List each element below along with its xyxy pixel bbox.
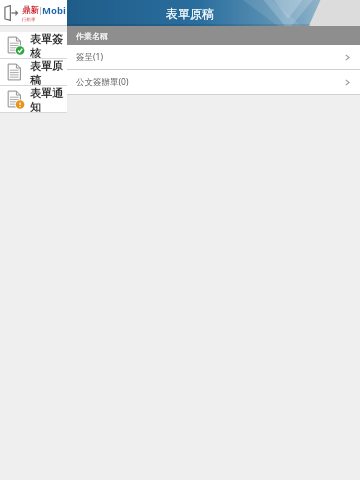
staticText: 表單原稿: [166, 6, 214, 21]
staticText: 表單簽核: [30, 32, 67, 58]
button[interactable]: Logout: [3, 5, 19, 21]
staticText: Mobi: [42, 4, 66, 17]
staticText: 公文簽辦單(0): [76, 76, 129, 88]
staticText: 簽呈(1): [76, 51, 103, 63]
button[interactable]: 簽呈(1): [67, 45, 360, 69]
staticText: 行動專: [22, 17, 36, 23]
staticText: 表單通知: [30, 86, 67, 112]
button[interactable]: 表單原稿: [0, 59, 67, 85]
staticText: 作業名稱: [76, 31, 108, 41]
staticText: 表單原稿: [30, 59, 67, 85]
button[interactable]: 表單簽核: [0, 32, 67, 58]
button[interactable]: 公文簽辦單(0): [67, 70, 360, 94]
staticText: 鼎新: [22, 5, 39, 16]
button[interactable]: 表單通知: [0, 86, 67, 112]
